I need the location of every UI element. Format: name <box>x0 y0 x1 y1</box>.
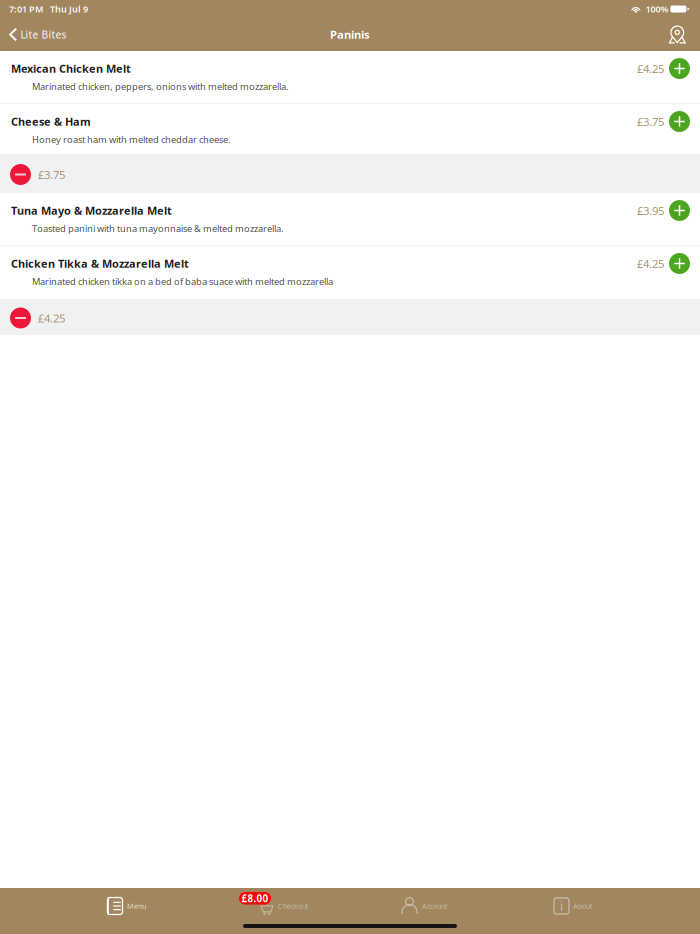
staticText: £4.25 <box>637 256 664 271</box>
button[interactable]: £3.75 <box>0 154 700 193</box>
button[interactable]: Tuna Mayo & Mozzarella Melt <box>0 193 700 245</box>
staticText: 100% <box>645 3 668 15</box>
staticText: Thu Jul 9 <box>50 3 88 15</box>
staticText: £4.25 <box>38 310 65 326</box>
staticText: Checkout <box>278 901 309 911</box>
staticText: £3.75 <box>38 167 65 182</box>
staticText: Marinated chicken, peppers, onions with … <box>32 80 289 93</box>
staticText: 7:01 PM <box>9 3 43 15</box>
button[interactable]: Lite Bites <box>0 18 74 51</box>
button[interactable]: Store locator <box>669 18 700 51</box>
staticText: Toasted panini with tuna mayonnaise & me… <box>32 222 284 235</box>
staticText: Paninis <box>330 27 370 42</box>
button[interactable]: i <box>499 891 648 921</box>
staticText: Marinated chicken tikka on a bed of baba… <box>32 275 333 288</box>
button[interactable]: Chicken Tikka & Mozzarella Melt <box>0 246 700 299</box>
staticText: Cheese & Ham <box>11 114 91 129</box>
staticText: Chicken Tikka & Mozzarella Melt <box>11 256 189 271</box>
staticText: Honey roast ham with melted cheddar chee… <box>32 133 231 146</box>
staticText: £3.95 <box>637 203 664 218</box>
staticText: £4.25 <box>637 61 664 76</box>
staticText: Account <box>422 901 448 911</box>
staticText: Lite Bites <box>20 28 66 41</box>
button[interactable]: Cheese & Ham <box>0 104 700 154</box>
staticText: Menu <box>127 901 146 911</box>
button[interactable]: Mexican Chicken Melt <box>0 51 700 103</box>
staticText: About <box>573 901 593 911</box>
button[interactable]: £4.25 <box>0 299 700 335</box>
staticText: Tuna Mayo & Mozzarella Melt <box>11 203 172 218</box>
staticText: £3.75 <box>637 114 664 129</box>
staticText: Mexican Chicken Melt <box>11 61 131 76</box>
button[interactable]: Account <box>350 891 499 921</box>
staticText: £8.00 <box>241 892 268 905</box>
button[interactable]: Checkout <box>201 891 350 921</box>
button[interactable]: Menu <box>52 891 201 921</box>
staticText: i <box>560 898 563 914</box>
